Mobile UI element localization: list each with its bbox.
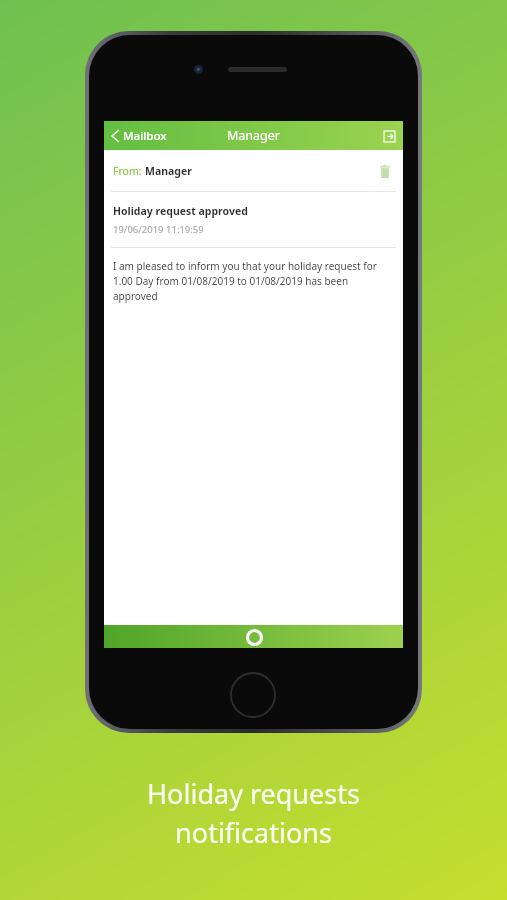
staticText: Manager (145, 164, 192, 178)
button[interactable]: Home (243, 626, 265, 648)
button[interactable]: Mailbox (109, 124, 170, 148)
staticText: Holiday request approved (113, 204, 248, 218)
staticText: Manager (227, 127, 280, 144)
staticText: I am pleased to inform you that your hol… (113, 259, 391, 303)
staticText: Holiday requests notifications (0, 775, 507, 851)
staticText: Mailbox (123, 128, 167, 144)
button[interactable]: Compose (381, 128, 397, 144)
button[interactable]: Delete (376, 162, 394, 180)
staticText: From: (113, 164, 145, 178)
staticText: 19/06/2019 11:19:59 (113, 223, 204, 236)
